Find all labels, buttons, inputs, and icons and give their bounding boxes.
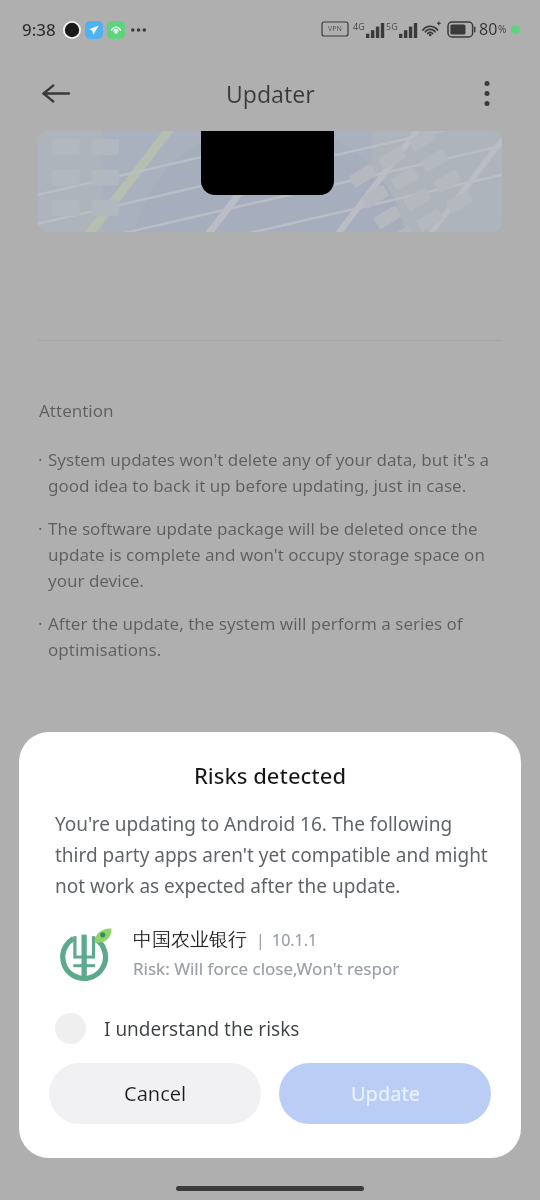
staticText: Cancel <box>124 1080 187 1107</box>
staticText: % <box>498 22 507 36</box>
staticText: · <box>38 612 43 635</box>
staticText: 4G <box>353 20 365 32</box>
button[interactable]: Back <box>30 68 80 118</box>
staticText: Attention <box>39 399 114 422</box>
staticText: Updater <box>226 78 315 109</box>
button[interactable]: 中国农业银行 <box>19 923 521 985</box>
staticText: Risk: Will force close,Won't respor <box>133 957 400 980</box>
staticText: 中国农业银行 <box>133 928 247 952</box>
staticText: The software update package will be dele… <box>48 517 508 592</box>
staticText: VPN <box>328 24 342 34</box>
button[interactable]: Cancel <box>49 1063 261 1124</box>
staticText: | <box>256 929 265 951</box>
staticText: Risks detected <box>19 760 521 790</box>
button[interactable]: More options <box>464 70 510 116</box>
staticText: · <box>38 517 43 540</box>
staticText: Update <box>351 1080 420 1107</box>
staticText: 10.1.1 <box>272 929 318 951</box>
button[interactable]: I understand the risks <box>19 1013 521 1044</box>
staticText: 80 <box>479 18 498 40</box>
staticText: After the update, the system will perfor… <box>48 612 508 661</box>
staticText: 5G <box>386 20 398 32</box>
button[interactable]: Update <box>279 1063 491 1124</box>
staticText: I understand the risks <box>104 1016 300 1042</box>
staticText: · <box>38 448 43 471</box>
staticText: 9:38 <box>22 18 56 41</box>
staticText: System updates won't delete any of your … <box>48 448 508 497</box>
staticText: You're updating to Android 16. The follo… <box>55 811 491 899</box>
